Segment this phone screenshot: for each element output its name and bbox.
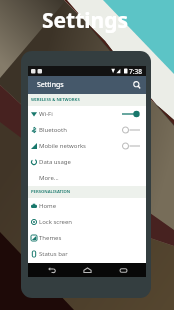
button[interactable]: Home bbox=[28, 198, 146, 214]
button[interactable]: Home bbox=[74, 263, 100, 277]
staticText: Data usage bbox=[39, 158, 71, 166]
button[interactable]: Themes bbox=[28, 230, 146, 246]
staticText: Wi-Fi bbox=[39, 110, 53, 118]
button[interactable]: More... bbox=[28, 170, 146, 186]
staticText: Settings bbox=[37, 80, 64, 90]
button[interactable]: Recents bbox=[110, 263, 136, 277]
button[interactable]: Lock screen bbox=[28, 214, 146, 230]
staticText: Lock screen bbox=[39, 218, 73, 226]
button[interactable]: Bluetooth bbox=[28, 122, 146, 138]
staticText: Themes bbox=[39, 234, 62, 242]
staticText: Home bbox=[39, 202, 57, 210]
staticText: PERSONALISATION bbox=[31, 189, 71, 195]
button[interactable]: Mobile networks bbox=[28, 138, 146, 154]
button[interactable]: Data usage bbox=[28, 154, 146, 170]
staticText: WIRELESS & NETWORKS bbox=[31, 97, 80, 103]
button[interactable]: Back bbox=[38, 263, 64, 277]
button[interactable]: Search bbox=[128, 76, 146, 94]
button[interactable]: Wi-Fi bbox=[28, 106, 146, 122]
staticText: Status bar bbox=[39, 250, 68, 258]
staticText: 7:38 bbox=[129, 67, 142, 76]
staticText: Mobile networks bbox=[39, 142, 86, 150]
staticText: Settings bbox=[42, 6, 129, 35]
staticText: More... bbox=[39, 174, 59, 182]
staticText: Bluetooth bbox=[39, 126, 67, 134]
button[interactable]: Status bar bbox=[28, 246, 146, 262]
